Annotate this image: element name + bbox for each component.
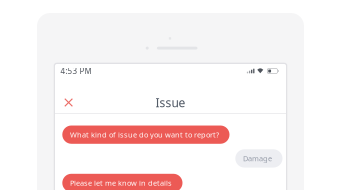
staticText: 4:53 PM bbox=[60, 66, 91, 76]
staticText: Damage bbox=[243, 153, 272, 163]
button[interactable]: What kind of issue do you want to report… bbox=[62, 125, 229, 144]
button[interactable]: Please let me know in details bbox=[62, 174, 182, 190]
button[interactable]: Damage bbox=[235, 149, 282, 168]
staticText: What kind of issue do you want to report… bbox=[70, 130, 219, 140]
staticText: Please let me know in details bbox=[70, 178, 172, 188]
button[interactable]: Close bbox=[60, 93, 78, 111]
staticText: Issue bbox=[155, 94, 185, 111]
